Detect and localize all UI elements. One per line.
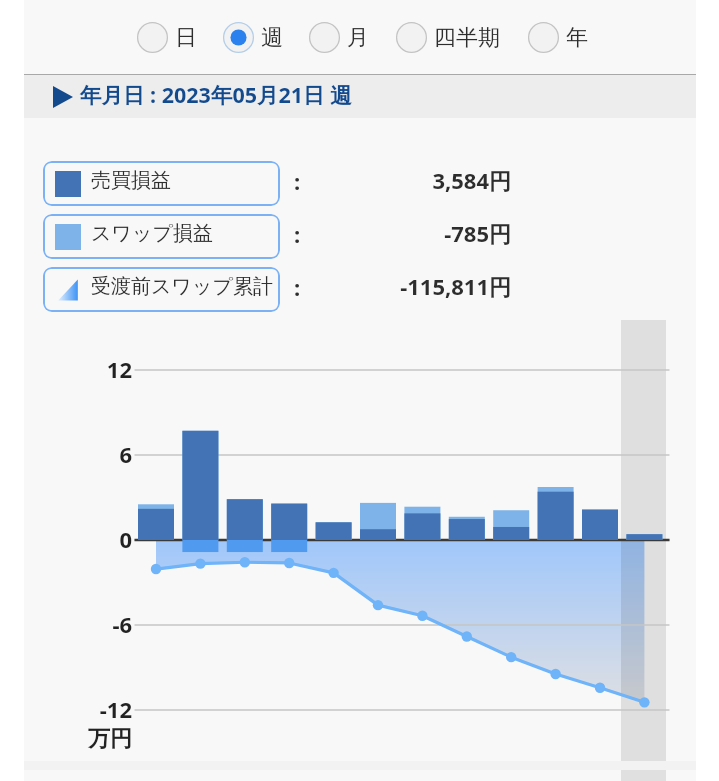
staticText: 日 <box>175 24 197 52</box>
staticText: 万円 <box>52 725 132 753</box>
button[interactable]: 月 <box>309 22 369 53</box>
button[interactable]: 年 <box>528 22 588 53</box>
staticText: 0 <box>52 524 132 554</box>
staticText: -6 <box>52 609 132 639</box>
staticText: : <box>294 166 301 196</box>
staticText: スワップ損益 <box>91 221 213 246</box>
staticText: : <box>294 219 301 249</box>
button[interactable]: 日 <box>137 22 197 53</box>
button[interactable]: 年月日 : 2023年05月21日 週 <box>24 74 696 118</box>
staticText: -115,811円 <box>301 271 511 301</box>
staticText: 月 <box>347 24 369 52</box>
staticText: 12 <box>52 354 132 384</box>
staticText: 売買損益 <box>91 168 171 193</box>
staticText: -12 <box>52 694 132 724</box>
button[interactable]: 受渡前スワップ累計 <box>43 267 280 312</box>
staticText: 3,584円 <box>301 165 511 195</box>
staticText: 週 <box>261 24 283 52</box>
button[interactable]: 四半期 <box>396 22 500 53</box>
staticText: 四半期 <box>434 24 500 52</box>
staticText: 6 <box>52 439 132 469</box>
button[interactable]: スワップ損益 <box>43 214 280 259</box>
staticText: 受渡前スワップ累計 <box>91 274 273 299</box>
staticText: 年 <box>566 24 588 52</box>
staticText: : <box>294 272 301 302</box>
button[interactable]: 週 <box>223 22 283 53</box>
button[interactable]: 売買損益 <box>43 161 280 206</box>
staticText: -785円 <box>301 218 511 248</box>
staticText: 年月日 : 2023年05月21日 週 <box>80 80 352 109</box>
